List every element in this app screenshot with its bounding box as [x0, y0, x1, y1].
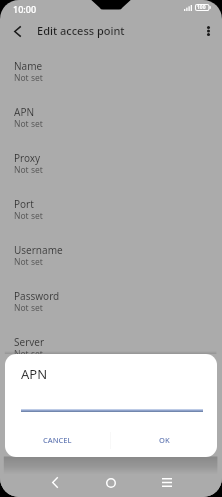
staticText: Username — [14, 243, 63, 257]
staticText: Server — [14, 335, 45, 349]
button[interactable]: APN — [0, 98, 222, 144]
staticText: 100 — [197, 4, 206, 11]
staticText: CANCEL — [43, 435, 72, 445]
staticText: Name — [14, 59, 43, 73]
button[interactable]: Proxy — [0, 144, 222, 190]
staticText: APN — [21, 365, 48, 383]
staticText: Not set — [14, 164, 43, 176]
button[interactable]: More options — [194, 17, 222, 45]
button[interactable]: Password — [0, 282, 222, 328]
staticText: Not set — [14, 72, 43, 84]
staticText: Not set — [14, 118, 43, 130]
staticText: 10:00 — [13, 3, 37, 15]
staticText: Not set — [14, 302, 43, 314]
button[interactable]: Name — [0, 52, 222, 98]
staticText: Not set — [14, 348, 43, 360]
staticText: Not set — [14, 210, 43, 222]
button[interactable]: Back — [37, 469, 73, 496]
staticText: Not set — [14, 256, 43, 268]
staticText: Proxy — [14, 151, 41, 165]
staticText: Password — [14, 289, 60, 303]
button[interactable]: Port — [0, 190, 222, 236]
button[interactable]: Navigate up — [3, 17, 31, 45]
button[interactable]: Username — [0, 236, 222, 282]
button[interactable]: CANCEL — [5, 425, 110, 455]
staticText: APN — [14, 105, 35, 119]
staticText: Port — [14, 197, 34, 211]
staticText: OK — [159, 435, 170, 445]
staticText: Edit access point — [37, 23, 125, 38]
button[interactable]: Home — [93, 469, 129, 496]
button[interactable]: OK — [111, 425, 217, 455]
button[interactable]: Recent apps — [149, 469, 185, 496]
button[interactable]: Server — [0, 328, 222, 374]
